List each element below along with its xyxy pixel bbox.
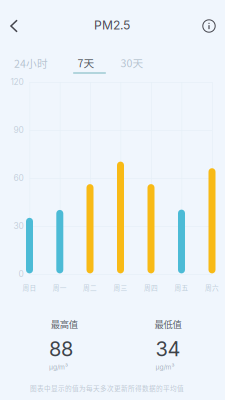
staticText: 34 bbox=[155, 337, 180, 361]
staticText: 88 bbox=[49, 337, 73, 361]
staticText: 最高值 bbox=[51, 317, 78, 331]
staticText: 周日 bbox=[22, 283, 36, 292]
staticText: 周六 bbox=[205, 283, 219, 292]
staticText: 30 bbox=[13, 221, 23, 231]
staticText: 周四 bbox=[144, 283, 158, 292]
button[interactable]: 7天 bbox=[70, 57, 102, 69]
button[interactable]: Back bbox=[1, 11, 27, 41]
staticText: 0 bbox=[18, 269, 23, 279]
staticText: 90 bbox=[13, 125, 23, 135]
button[interactable]: 30天 bbox=[116, 57, 148, 69]
staticText: 周二 bbox=[83, 283, 97, 292]
staticText: 周五 bbox=[174, 283, 188, 292]
staticText: 120 bbox=[10, 77, 23, 87]
button[interactable]: 24小时 bbox=[6, 57, 56, 69]
staticText: μg/m³ bbox=[155, 363, 174, 371]
staticText: 7天 bbox=[77, 55, 94, 70]
staticText: 周一 bbox=[53, 283, 67, 292]
staticText: 周三 bbox=[113, 283, 127, 292]
staticText: μg/m³ bbox=[49, 363, 68, 371]
button[interactable]: Information bbox=[196, 11, 222, 41]
staticText: 最低值 bbox=[154, 317, 181, 331]
staticText: 30天 bbox=[120, 55, 143, 70]
staticText: PM2.5 bbox=[94, 18, 130, 32]
staticText: 60 bbox=[13, 173, 23, 183]
staticText: 图表中显示的值为每天多次更新所得数据的平均值 bbox=[30, 383, 184, 393]
staticText: 24小时 bbox=[14, 55, 48, 71]
